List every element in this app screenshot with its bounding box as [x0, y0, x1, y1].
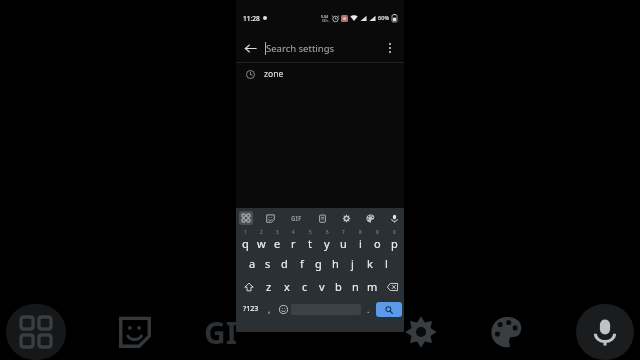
staticText: 1	[244, 229, 247, 235]
staticText: m	[367, 279, 378, 294]
button[interactable]: 1	[237, 228, 253, 252]
staticText: 2	[260, 229, 263, 235]
staticText: v	[319, 279, 325, 294]
button[interactable]: Settings	[339, 211, 353, 225]
button[interactable]: g	[310, 252, 327, 275]
staticText: r	[291, 236, 296, 251]
button[interactable]: 0	[386, 228, 403, 252]
button[interactable]: n	[347, 275, 364, 298]
button[interactable]: Search settings	[265, 34, 376, 62]
button[interactable]: d	[276, 252, 293, 275]
staticText: g	[315, 256, 322, 271]
button[interactable]: f	[293, 252, 310, 275]
staticText: ?123	[243, 304, 259, 314]
button[interactable]: Voice input	[387, 211, 401, 225]
button[interactable]: k	[361, 252, 378, 275]
button[interactable]: zone	[236, 63, 404, 85]
button[interactable]: ,	[263, 298, 276, 320]
staticText: 60%	[378, 14, 390, 22]
staticText: 0	[393, 229, 396, 235]
staticText: q	[242, 236, 249, 251]
staticText: t	[308, 236, 312, 251]
button[interactable]: 9	[369, 228, 386, 252]
staticText: j	[351, 256, 354, 271]
staticText: a	[249, 256, 256, 271]
staticText: GIF	[291, 214, 302, 222]
staticText: h	[332, 256, 339, 271]
staticText: GIF	[204, 312, 254, 353]
button[interactable]: 3	[269, 228, 285, 252]
staticText: x	[284, 279, 290, 294]
button[interactable]: More options	[376, 34, 404, 62]
staticText: c	[302, 279, 308, 294]
staticText: s	[265, 256, 271, 271]
staticText: 7	[342, 229, 345, 235]
button[interactable]: GIF	[287, 211, 305, 225]
staticText: 8	[359, 229, 362, 235]
staticText: 6	[326, 229, 329, 235]
button[interactable]: b	[330, 275, 347, 298]
staticText: .	[367, 303, 370, 315]
button[interactable]: z	[260, 275, 278, 298]
staticText: o	[374, 236, 381, 251]
staticText: w	[257, 236, 266, 251]
button[interactable]: Themes	[363, 211, 377, 225]
button[interactable]: .	[361, 298, 376, 320]
button[interactable]: 5	[301, 228, 318, 252]
button[interactable]: Navigate up	[236, 34, 264, 62]
button[interactable]: a	[244, 252, 260, 275]
staticText: e	[274, 236, 281, 251]
staticText: u	[340, 236, 347, 251]
button[interactable]: Emoji	[276, 298, 291, 320]
staticText: 5.04	[321, 14, 329, 19]
button[interactable]: 6	[318, 228, 335, 252]
staticText: b	[335, 279, 342, 294]
staticText: 3	[276, 229, 279, 235]
staticText: z	[266, 279, 272, 294]
button[interactable]: Search	[376, 302, 402, 317]
staticText: ,	[268, 303, 271, 315]
button[interactable]: Clipboard	[315, 211, 329, 225]
button[interactable]: s	[260, 252, 276, 275]
staticText: Search settings	[266, 42, 335, 55]
button[interactable]: c	[296, 275, 313, 298]
button[interactable]: 2	[253, 228, 269, 252]
staticText: n	[352, 279, 359, 294]
staticText: k	[367, 256, 373, 271]
staticText: 9	[376, 229, 379, 235]
button[interactable]: ?123	[238, 298, 263, 320]
button[interactable]: x	[278, 275, 296, 298]
staticText: 5	[309, 229, 312, 235]
button[interactable]: m	[364, 275, 381, 298]
button[interactable]: 4	[285, 228, 301, 252]
button[interactable]: Shift	[237, 275, 260, 298]
button[interactable]: Toolbar apps	[239, 211, 253, 225]
staticText: zone	[264, 68, 284, 80]
staticText: d	[281, 256, 288, 271]
button[interactable]: 7	[335, 228, 352, 252]
button[interactable]: h	[327, 252, 344, 275]
button[interactable]: Stickers	[263, 211, 277, 225]
button[interactable]: v	[313, 275, 330, 298]
staticText: 4	[292, 229, 295, 235]
button[interactable]: 8	[352, 228, 369, 252]
staticText: i	[359, 236, 362, 251]
staticText: y	[324, 236, 330, 251]
staticText: f	[300, 256, 304, 271]
staticText: 11:28	[243, 14, 260, 23]
staticText: KB/s	[322, 19, 329, 23]
staticText: p	[391, 236, 398, 251]
button[interactable]: j	[344, 252, 361, 275]
button[interactable]: Backspace	[381, 275, 403, 298]
staticText: l	[385, 256, 388, 271]
button[interactable]: l	[378, 252, 395, 275]
